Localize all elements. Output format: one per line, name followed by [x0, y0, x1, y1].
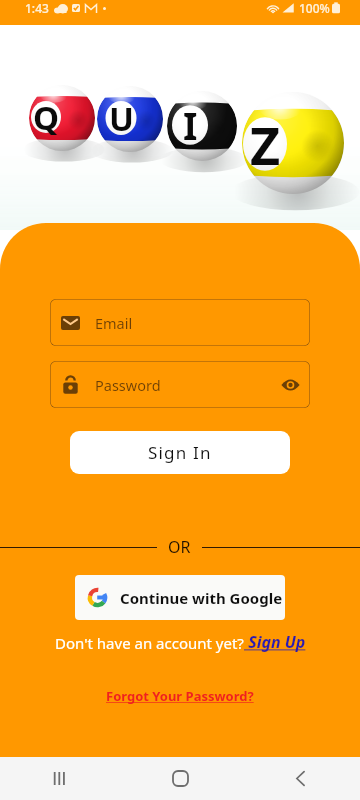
- staticText: Password: [95, 375, 161, 395]
- staticText: Sign In: [148, 441, 212, 464]
- staticText: 1:43: [25, 0, 49, 16]
- staticText: Continue with Google: [120, 588, 283, 608]
- button[interactable]: Don't have an account yet?: [0, 631, 360, 653]
- staticText: Q: [33, 95, 60, 140]
- staticText: Don't have an account yet?: [55, 633, 244, 653]
- staticText: Email: [95, 313, 133, 333]
- button[interactable]: Email: [50, 299, 310, 346]
- staticText: Z: [250, 109, 281, 180]
- button[interactable]: Continue with Google: [75, 575, 285, 620]
- button[interactable]: Back: [240, 757, 360, 800]
- button[interactable]: Sign In: [70, 431, 290, 474]
- button[interactable]: Home: [120, 757, 240, 800]
- staticText: Sign Up: [244, 631, 306, 653]
- button[interactable]: Forgot Your Password?: [106, 687, 254, 705]
- staticText: U: [109, 96, 134, 141]
- staticText: 100%: [299, 0, 330, 16]
- staticText: OR: [168, 536, 191, 558]
- button[interactable]: Password: [50, 361, 310, 408]
- staticText: I: [183, 100, 198, 150]
- button[interactable]: Recent apps: [0, 757, 120, 800]
